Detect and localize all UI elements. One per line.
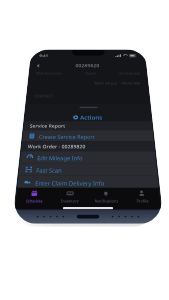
staticText: Service Report bbox=[29, 123, 66, 129]
button[interactable]: Create Service Report bbox=[22, 130, 154, 142]
staticText: CONTACT bbox=[33, 93, 54, 98]
staticText: Scheduled bbox=[119, 71, 140, 75]
staticText: Enter Claim Delivery Info bbox=[35, 179, 105, 187]
staticText: Notifications bbox=[95, 198, 119, 203]
staticText: 00289820 bbox=[75, 63, 100, 69]
button[interactable]: Fast Scan bbox=[18, 163, 158, 176]
button[interactable]: Actions bbox=[24, 112, 152, 121]
button[interactable]: Profile bbox=[123, 188, 161, 203]
staticText: Work Order - 00289820 bbox=[27, 143, 86, 150]
button[interactable]: Inventory bbox=[52, 188, 88, 203]
button[interactable]: Notifications bbox=[88, 188, 124, 203]
staticText: Open bbox=[85, 71, 96, 75]
button[interactable]: Schedule bbox=[15, 188, 53, 203]
button[interactable]: Back bbox=[36, 62, 45, 69]
button[interactable]: Edit Mileage Info bbox=[20, 151, 156, 163]
staticText: 09:00 AM bbox=[121, 81, 141, 85]
staticText: Maintenance bbox=[36, 71, 62, 75]
staticText: 9:41 bbox=[39, 54, 48, 58]
staticText: Edit Mileage Info bbox=[37, 154, 83, 161]
staticText: Fast Scan bbox=[36, 166, 62, 174]
staticText: Profile bbox=[136, 198, 149, 203]
staticText: Mon 24 Jun bbox=[94, 81, 118, 85]
button[interactable]: Enter Claim Delivery Info bbox=[17, 176, 159, 189]
staticText: Inventory bbox=[61, 198, 79, 203]
staticText: Actions bbox=[80, 113, 103, 120]
staticText: Create Service Report bbox=[39, 133, 95, 140]
staticText: Schedule bbox=[26, 198, 43, 203]
